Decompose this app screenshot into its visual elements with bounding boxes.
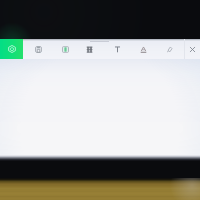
button[interactable]: Insert xyxy=(59,39,72,59)
button[interactable]: Close xyxy=(186,39,199,59)
button[interactable]: Settings xyxy=(163,39,176,59)
button[interactable]: Save xyxy=(32,39,45,59)
button[interactable]: Table xyxy=(83,39,96,59)
button[interactable]: App menu xyxy=(0,39,23,59)
button[interactable]: Font colour xyxy=(137,39,150,59)
button[interactable]: Text style xyxy=(111,39,124,59)
